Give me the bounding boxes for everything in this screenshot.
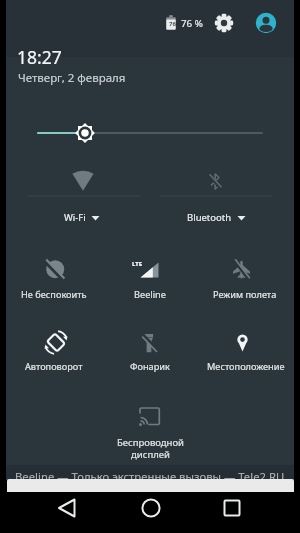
button[interactable] <box>210 488 254 532</box>
button[interactable] <box>102 396 198 466</box>
button[interactable] <box>250 7 278 35</box>
staticText: 76 <box>169 20 176 28</box>
button[interactable] <box>152 160 280 222</box>
staticText: Wi-Fi <box>64 211 86 224</box>
staticText: Beeline <box>134 288 166 301</box>
staticText: Beeline — Только экстренные вызовы — Tel… <box>15 469 285 484</box>
staticText: Режим полета <box>213 288 277 301</box>
button[interactable] <box>102 322 198 384</box>
button[interactable] <box>128 488 172 532</box>
staticText: Четверг, 2 февраля <box>18 70 126 85</box>
staticText: Не беспокоить <box>21 288 87 301</box>
staticText: LTE <box>132 260 143 268</box>
button[interactable] <box>198 322 294 384</box>
staticText: Автоповорот <box>25 360 83 373</box>
button[interactable] <box>30 118 270 146</box>
staticText: Bluetooth <box>187 211 232 224</box>
button[interactable] <box>6 322 102 384</box>
staticText: Беспроводной дисплей <box>117 436 184 460</box>
button[interactable] <box>198 248 294 310</box>
staticText: 18:27 <box>17 45 62 67</box>
button[interactable] <box>102 248 198 310</box>
staticText: 76 % <box>181 17 203 30</box>
button[interactable] <box>6 248 102 310</box>
staticText: Фонарик <box>130 360 170 373</box>
staticText: Местоположение <box>207 360 285 373</box>
button[interactable] <box>20 160 148 222</box>
button[interactable] <box>48 488 92 532</box>
